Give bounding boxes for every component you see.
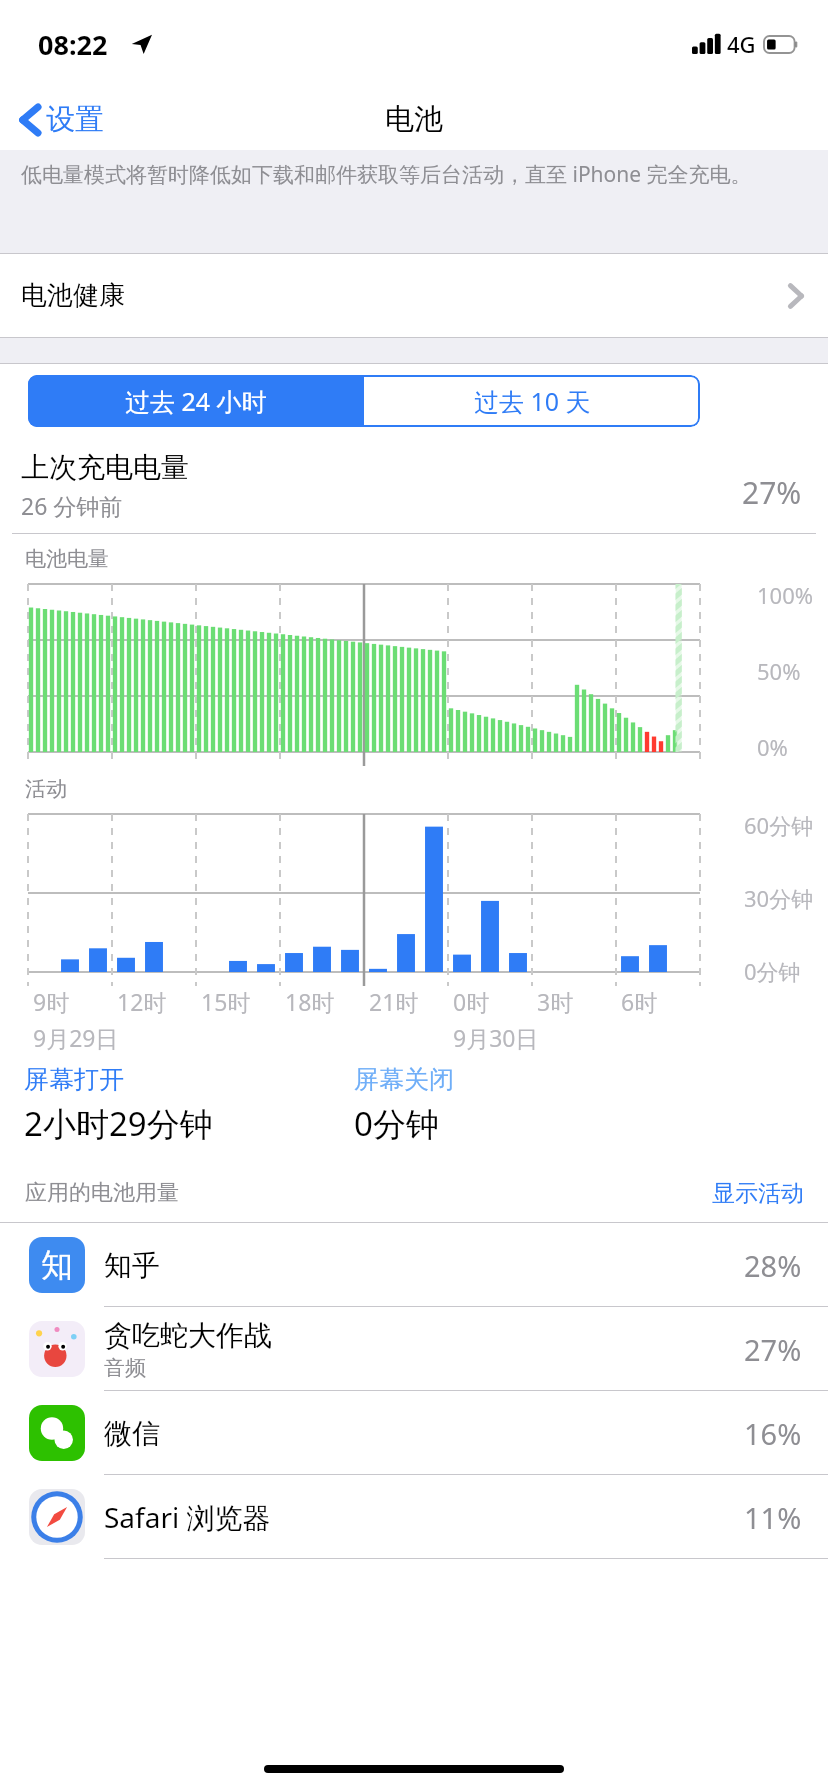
staticText: 过去 10 天 <box>474 384 591 418</box>
button[interactable]: 电池健康 <box>0 254 828 337</box>
button[interactable]: 知 <box>0 1223 828 1307</box>
staticText: 27% <box>744 1330 802 1369</box>
staticText: 活动 <box>25 776 67 802</box>
staticText: 18时 <box>285 986 335 1017</box>
staticText: 9时 <box>33 986 70 1017</box>
staticText: Safari 浏览器 <box>104 1498 271 1536</box>
staticText: 21时 <box>369 986 419 1017</box>
staticText: 电池健康 <box>21 279 125 312</box>
staticText: 60分钟 <box>744 810 814 840</box>
staticText: 100% <box>757 580 814 610</box>
staticText: 12时 <box>117 986 167 1017</box>
staticText: 低电量模式将暂时降低如下载和邮件获取等后台活动，直至 iPhone 完全充电。 <box>21 160 752 189</box>
staticText: 显示活动 <box>712 1179 804 1208</box>
staticText: 电池 <box>385 101 443 138</box>
staticText: 15时 <box>201 986 251 1017</box>
staticText: 0分钟 <box>744 956 801 986</box>
staticText: 知 <box>41 1245 73 1285</box>
staticText: 设置 <box>46 101 104 138</box>
staticText: 2小时29分钟 <box>24 1101 213 1146</box>
staticText: 屏幕打开 <box>24 1064 124 1095</box>
staticText: 4G <box>727 29 756 59</box>
staticText: 6时 <box>621 986 658 1017</box>
staticText: 11% <box>744 1498 802 1537</box>
button[interactable]: 显示活动 <box>712 1179 804 1208</box>
staticText: 屏幕关闭 <box>354 1064 454 1095</box>
staticText: 30分钟 <box>744 883 814 913</box>
staticText: 音频 <box>104 1355 146 1381</box>
staticText: 上次充电电量 <box>21 450 189 485</box>
staticText: 知乎 <box>104 1248 160 1283</box>
staticText: 9月29日 <box>33 1022 119 1053</box>
button[interactable]: 过去 24 小时 <box>28 375 364 427</box>
staticText: 微信 <box>104 1416 160 1451</box>
button[interactable]: 微信 <box>0 1391 828 1475</box>
staticText: 3时 <box>537 986 574 1017</box>
staticText: 0分钟 <box>354 1101 439 1146</box>
staticText: 贪吃蛇大作战 <box>104 1318 272 1353</box>
staticText: 9月30日 <box>453 1022 539 1053</box>
staticText: 26 分钟前 <box>21 490 123 521</box>
button[interactable]: 设置 <box>20 101 104 138</box>
staticText: 应用的电池用量 <box>25 1179 179 1207</box>
staticText: 16% <box>744 1414 802 1453</box>
staticText: 0% <box>757 732 788 762</box>
staticText: 27% <box>742 472 802 513</box>
staticText: 过去 24 小时 <box>125 384 267 418</box>
staticText: 电池电量 <box>25 546 109 572</box>
staticText: 0时 <box>453 986 490 1017</box>
staticText: 08:22 <box>38 26 108 63</box>
button[interactable]: 贪吃蛇大作战 <box>0 1307 828 1391</box>
staticText: 50% <box>757 656 801 686</box>
button[interactable]: 过去 10 天 <box>364 375 700 427</box>
staticText: 28% <box>744 1246 802 1285</box>
button[interactable]: Safari 浏览器 <box>0 1475 828 1559</box>
